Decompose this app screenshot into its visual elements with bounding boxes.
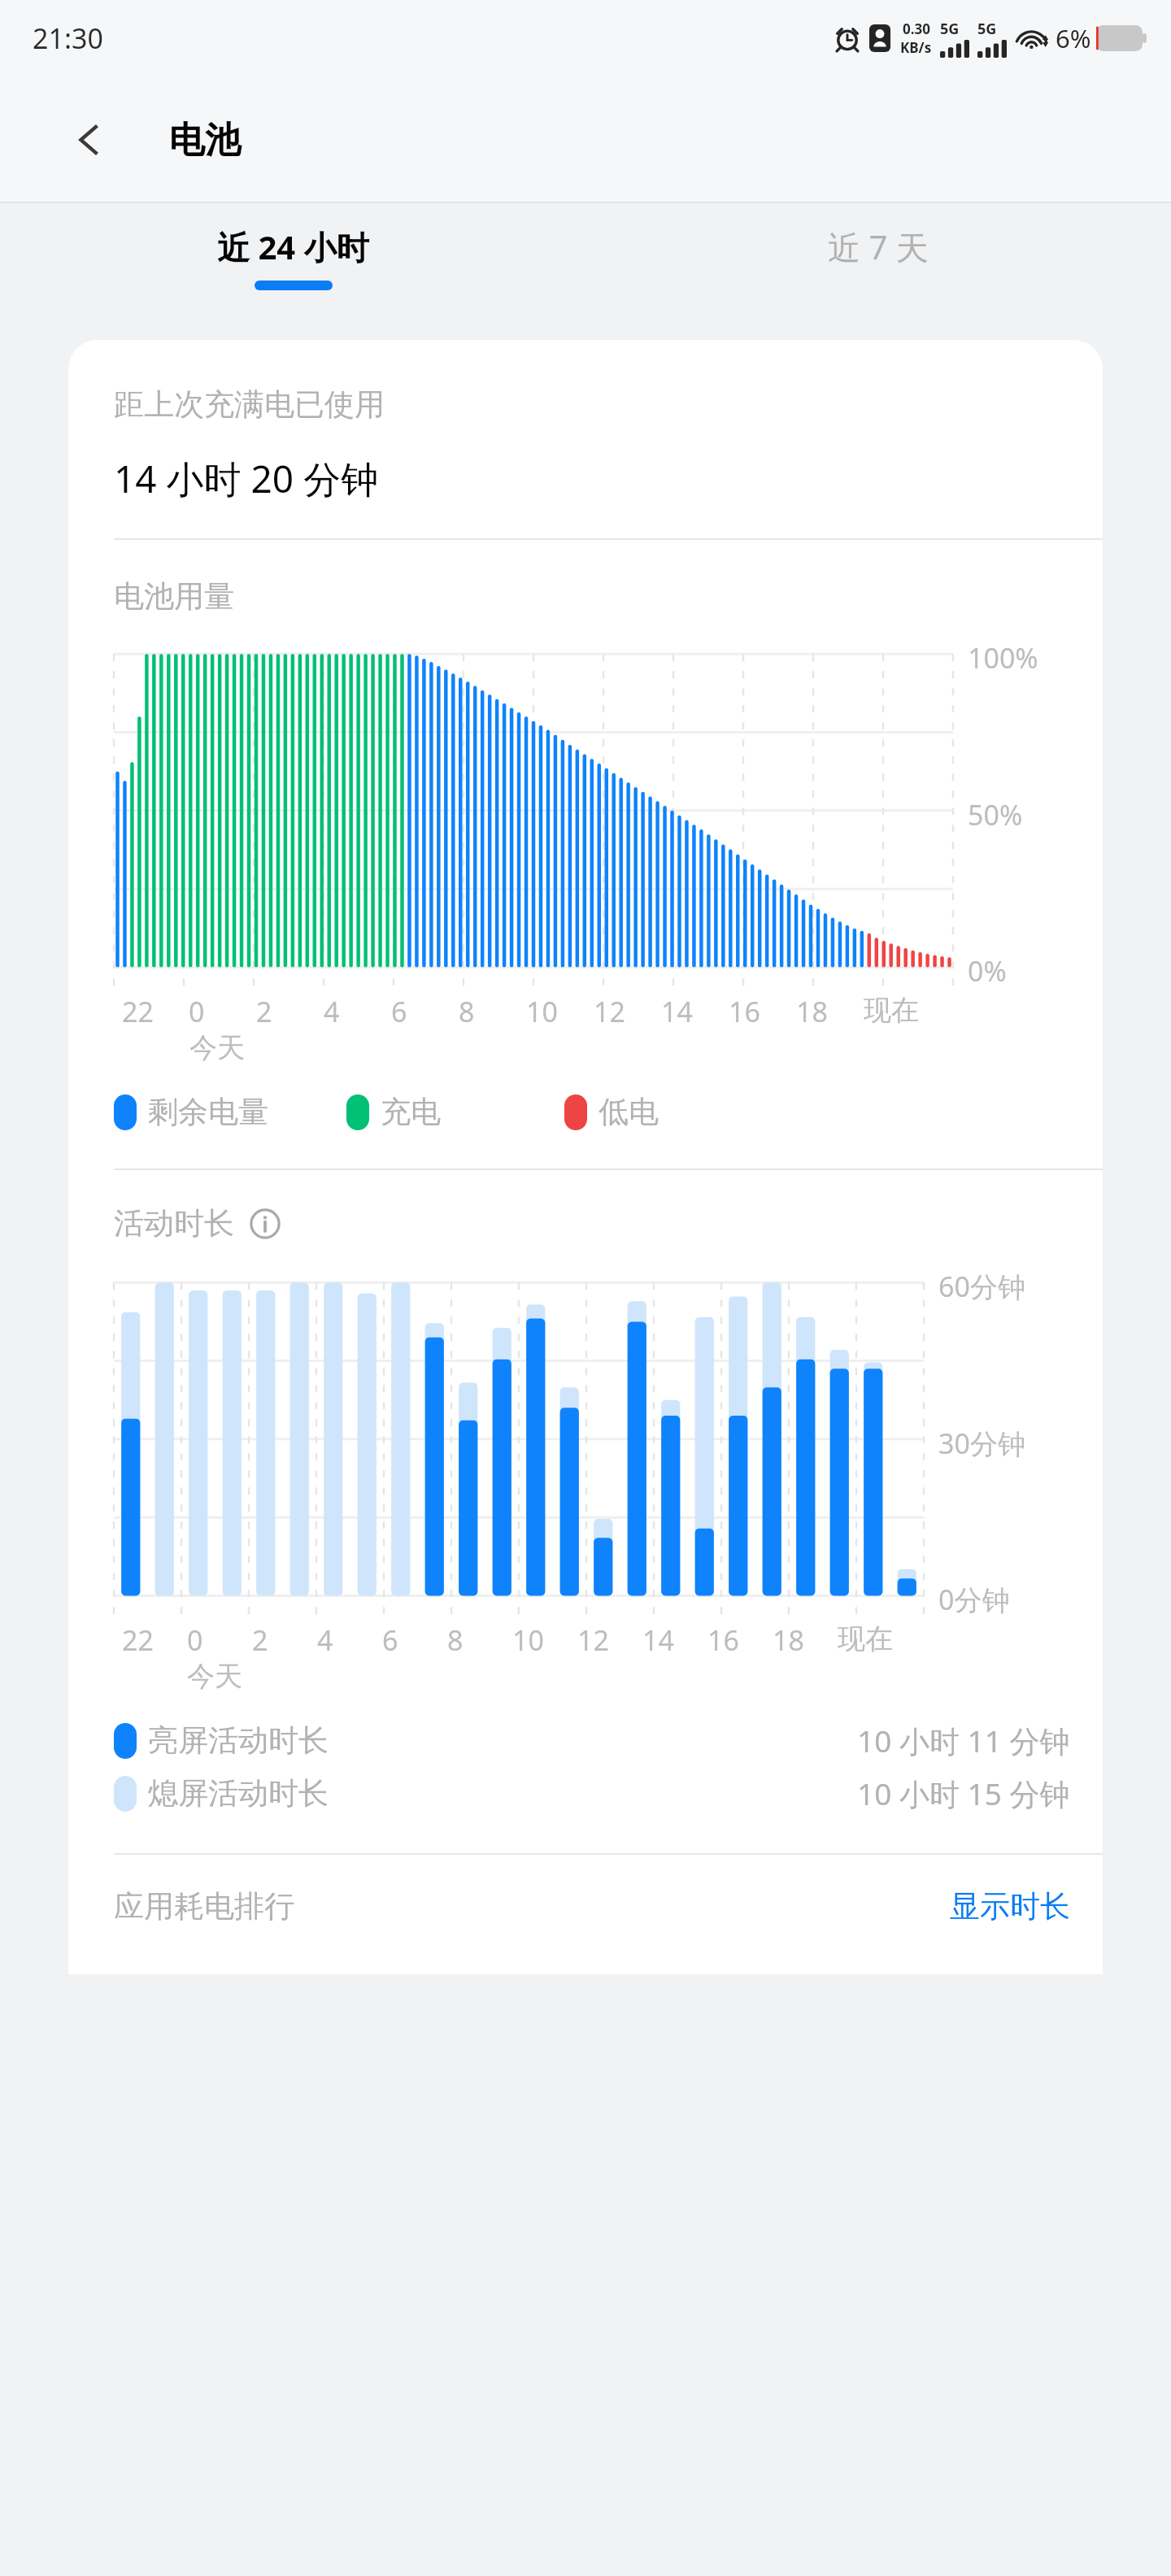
staticText: 6	[391, 993, 407, 1030]
staticText: 应用耗电排行	[114, 1887, 294, 1925]
staticText: 0.30	[903, 20, 930, 38]
staticText: 10 小时 11 分钟	[857, 1720, 1070, 1761]
staticText: 10	[526, 993, 558, 1030]
staticText: 显示时长	[950, 1887, 1070, 1925]
button[interactable]: 说明	[247, 1206, 283, 1242]
staticText: 现在	[864, 993, 919, 1028]
staticText: 4	[324, 993, 340, 1030]
staticText: 熄屏活动时长	[148, 1774, 329, 1812]
staticText: 12	[577, 1621, 609, 1659]
staticText: 低电	[599, 1093, 659, 1131]
button[interactable]: 返回	[57, 108, 120, 172]
staticText: KB/s	[900, 38, 932, 57]
staticText: 14	[661, 993, 693, 1030]
button[interactable]: 应用耗电排行	[114, 1887, 1070, 1925]
staticText: 8	[459, 993, 475, 1030]
staticText: 16	[707, 1621, 739, 1659]
staticText: 电池用量	[114, 577, 234, 616]
staticText: 0分钟	[938, 1581, 1010, 1615]
button[interactable]: 近 24 小时	[0, 203, 585, 319]
staticText: 5G	[940, 19, 960, 39]
staticText: 18	[773, 1621, 804, 1659]
staticText: 10 小时 15 分钟	[857, 1773, 1070, 1814]
staticText: 活动时长	[114, 1204, 234, 1242]
staticText: 4	[317, 1621, 333, 1659]
staticText: 近 24 小时	[217, 224, 369, 269]
staticText: 距上次充满电已使用	[114, 385, 385, 424]
staticText: 50%	[968, 796, 1023, 833]
staticText: 10	[512, 1621, 544, 1659]
staticText: 16	[729, 993, 760, 1030]
staticText: 6	[382, 1621, 398, 1659]
staticText: 2	[256, 993, 272, 1030]
staticText: 14 小时 20 分钟	[114, 453, 379, 504]
staticText: 100%	[968, 639, 1038, 677]
staticText: 22	[122, 1621, 154, 1659]
staticText: 21:30	[33, 20, 103, 57]
staticText: 剩余电量	[148, 1093, 268, 1131]
staticText: 6%	[1056, 21, 1091, 55]
staticText: 0%	[968, 952, 1007, 986]
staticText: 2	[252, 1621, 268, 1659]
staticText: 0	[187, 1621, 203, 1659]
staticText: 近 7 天	[828, 224, 929, 269]
staticText: 12	[594, 993, 625, 1030]
staticText: 充电	[381, 1093, 441, 1131]
staticText: 亮屏活动时长	[148, 1721, 329, 1760]
staticText: 8	[447, 1621, 464, 1659]
button[interactable]: 近 7 天	[585, 203, 1171, 319]
staticText: 14	[642, 1621, 674, 1659]
staticText: 5G	[977, 19, 997, 39]
staticText: 60分钟	[938, 1268, 1025, 1305]
staticText: 30分钟	[938, 1425, 1025, 1462]
staticText: 18	[796, 993, 828, 1030]
staticText: 电池	[169, 118, 241, 163]
staticText: 22	[122, 993, 154, 1030]
staticText: 今天	[187, 1659, 242, 1694]
staticText: 今天	[189, 1030, 245, 1065]
staticText: 0	[189, 993, 205, 1030]
staticText: 现在	[838, 1621, 893, 1656]
